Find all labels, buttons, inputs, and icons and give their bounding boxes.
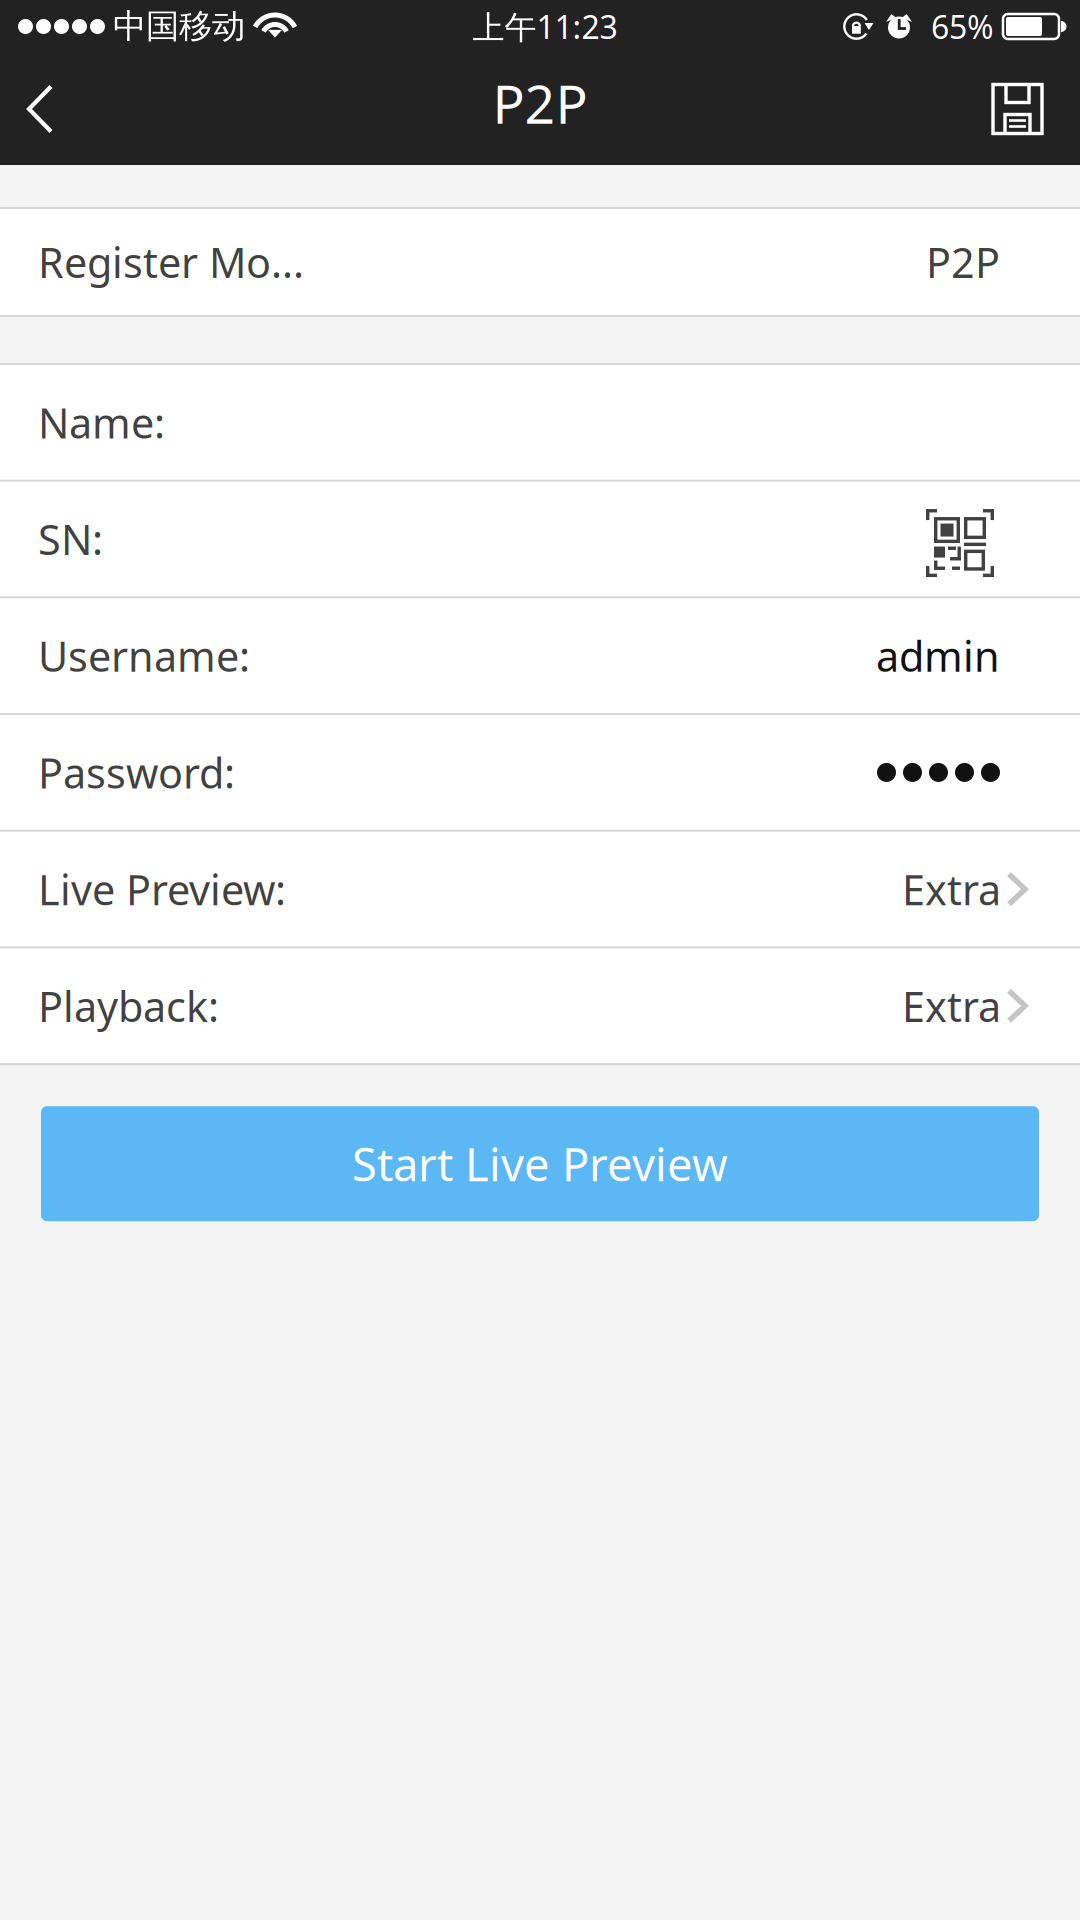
staticText: 65% (931, 5, 994, 48)
button[interactable]: Playback: (0, 948, 1080, 1063)
staticText: Register Mo... (38, 235, 304, 289)
staticText: Start Live Preview (352, 1134, 728, 1194)
button[interactable]: Name: (0, 365, 1080, 480)
button[interactable]: Back (0, 53, 84, 165)
staticText: 上午11:23 (472, 5, 617, 48)
staticText: SN: (38, 512, 103, 566)
button[interactable]: SN, scan QR code (0, 482, 1080, 596)
staticText: P2P (926, 235, 1000, 289)
staticText: P2P (492, 68, 587, 138)
staticText: Name: (38, 395, 165, 450)
button[interactable]: Start Live Preview (41, 1106, 1039, 1221)
staticText: Password: (38, 745, 235, 800)
button[interactable]: Password: (0, 715, 1080, 830)
staticText: Extra (902, 978, 1001, 1033)
button[interactable]: Save (961, 53, 1080, 165)
staticText: admin (876, 628, 1000, 683)
button[interactable]: Live Preview: (0, 832, 1080, 946)
button[interactable]: Username: (0, 598, 1080, 713)
staticText: Playback: (38, 978, 219, 1033)
staticText: 中国移动 (113, 6, 245, 47)
staticText: Live Preview: (38, 862, 286, 917)
staticText: Extra (902, 862, 1001, 917)
staticText: Username: (38, 628, 250, 683)
button[interactable]: Register Mo... (0, 209, 1080, 315)
